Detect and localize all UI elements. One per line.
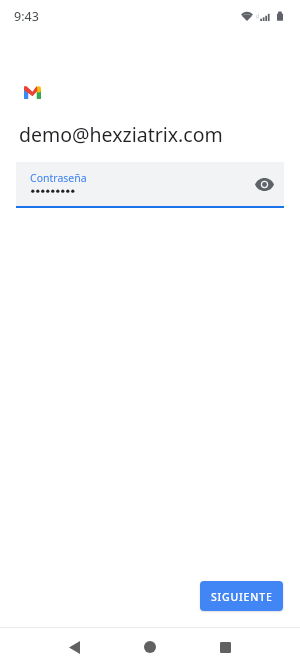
staticText: SIGUIENTE [211, 590, 273, 604]
button[interactable]: SIGUIENTE [200, 581, 283, 611]
button[interactable]: Home [129, 627, 171, 667]
staticText: 9:43 [14, 8, 39, 25]
button[interactable]: Mostrar contraseña [250, 169, 278, 200]
button[interactable]: Contraseña [16, 162, 284, 206]
staticText: Contraseña [30, 171, 87, 185]
staticText: demo@hexziatrix.com [19, 121, 223, 148]
button[interactable]: Back [53, 627, 95, 667]
button[interactable]: Recent apps [204, 627, 246, 667]
